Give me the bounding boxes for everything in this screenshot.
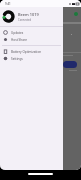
- staticText: Connected: [18, 18, 32, 22]
- staticText: Host Share: [11, 38, 27, 42]
- staticText: Updates: [11, 31, 24, 35]
- staticText: Settings: [11, 57, 23, 61]
- staticText: Beem 1019: [18, 12, 39, 17]
- button[interactable]: Battery Optimization: [0, 48, 63, 55]
- button[interactable]: Settings: [0, 55, 63, 62]
- button[interactable]: Updates: [0, 29, 63, 36]
- staticText: Battery Optimization: [11, 50, 42, 54]
- button[interactable]: Host Share: [0, 36, 63, 43]
- button[interactable]: Primary action: [63, 61, 77, 68]
- staticText: 9:41: [5, 2, 11, 6]
- button[interactable]: Beem 1019: [2, 7, 63, 26]
